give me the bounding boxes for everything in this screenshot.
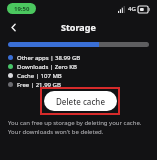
staticText: Downloads | Zero KB — [17, 63, 77, 71]
staticText: 19:50 — [14, 5, 30, 13]
button[interactable]: Downloads | Zero KB — [8, 62, 77, 71]
button[interactable]: Delete cache — [44, 91, 117, 111]
button[interactable]: Back — [4, 18, 22, 36]
staticText: 4G — [128, 5, 136, 13]
button[interactable]: Cache | 107 MB — [8, 71, 62, 80]
staticText: You can free up storage by deleting your… — [8, 119, 150, 135]
staticText: Other apps | 38.99 GB — [17, 54, 81, 62]
button[interactable]: Free | 21.99 GB — [8, 80, 61, 89]
staticText: Free | 21.99 GB — [17, 81, 61, 89]
staticText: Cache | 107 MB — [17, 72, 62, 80]
button[interactable]: Other apps | 38.99 GB — [8, 53, 81, 62]
staticText: Storage — [61, 21, 96, 33]
staticText: Delete cache — [56, 96, 105, 107]
